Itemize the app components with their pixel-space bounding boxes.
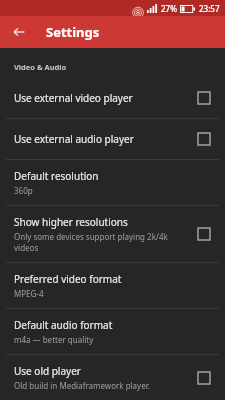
staticText: Only some devices support playing 2k/4k … xyxy=(14,231,187,253)
staticText: 360p xyxy=(14,185,33,196)
staticText: Video & Audio xyxy=(14,62,67,72)
staticText: MPEG-4 xyxy=(14,288,44,299)
button[interactable]: Use external video player xyxy=(0,78,225,118)
button[interactable]: Use old player xyxy=(193,367,215,389)
staticText: Settings xyxy=(46,23,100,41)
staticText: Use external video player xyxy=(14,91,133,105)
staticText: Default audio format xyxy=(14,318,113,332)
button[interactable]: Show higher resolutions xyxy=(0,206,225,262)
button[interactable]: Default audio format xyxy=(0,309,225,354)
staticText: Use external audio player xyxy=(14,132,134,146)
staticText: 23:57 xyxy=(199,3,220,14)
button[interactable]: Use old player xyxy=(0,355,225,400)
staticText: Default resolution xyxy=(14,169,99,183)
button[interactable]: Default resolution xyxy=(0,160,225,205)
button[interactable]: Show higher resolutions xyxy=(193,223,215,245)
button[interactable]: Back xyxy=(9,22,29,42)
button[interactable]: Use external audio player xyxy=(0,119,225,159)
staticText: Old build in Mediaframework player. xyxy=(14,380,150,391)
staticText: m4a — better quality xyxy=(14,334,94,345)
button[interactable]: Preferred video format xyxy=(0,263,225,308)
staticText: 27% xyxy=(161,3,177,14)
staticText: Preferred video format xyxy=(14,272,122,286)
staticText: Show higher resolutions xyxy=(14,215,128,229)
button[interactable]: Use external audio player xyxy=(193,128,215,150)
button[interactable]: Use external video player xyxy=(193,87,215,109)
staticText: Use old player xyxy=(14,364,81,378)
